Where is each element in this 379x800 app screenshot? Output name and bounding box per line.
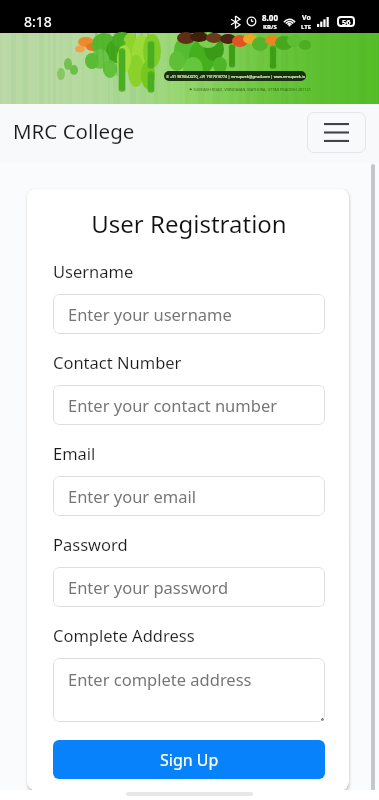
staticText: Contact Number xyxy=(53,351,182,373)
staticText: Email xyxy=(53,442,96,464)
staticText: User Registration xyxy=(53,207,325,240)
button[interactable]: Enter your username xyxy=(53,294,325,334)
button[interactable]: Enter your email xyxy=(53,476,325,516)
staticText: Username xyxy=(53,260,134,282)
staticText: ✆ +91 9876543210, +91 7017010774 | mrcup… xyxy=(166,74,305,79)
staticText: ⚑ SUBHASH ROAD, VRINDAVAN, MATHURA, UTTA… xyxy=(189,87,311,92)
staticText: KB/S xyxy=(263,23,277,31)
staticText: Password xyxy=(53,533,128,555)
staticText: Vo xyxy=(302,13,311,23)
staticText: 8:18 xyxy=(24,12,52,31)
staticText: Enter your password xyxy=(68,576,229,598)
staticText: Complete Address xyxy=(53,624,195,646)
button[interactable]: Sign Up xyxy=(53,740,325,779)
staticText: LTE xyxy=(301,23,312,31)
staticText: 56 xyxy=(342,17,351,27)
button[interactable]: Enter complete address xyxy=(53,658,325,722)
staticText: 8.00 xyxy=(262,12,278,23)
staticText: Enter your username xyxy=(68,303,232,325)
staticText: Enter your contact number xyxy=(68,394,278,416)
staticText: Enter complete address xyxy=(68,668,252,690)
button[interactable]: Enter your password xyxy=(53,567,325,607)
staticText: MRC College xyxy=(13,117,135,145)
staticText: Sign Up xyxy=(160,749,219,771)
staticText: Enter your email xyxy=(68,485,196,507)
button[interactable]: Open navigation menu xyxy=(307,112,366,153)
button[interactable]: Enter your contact number xyxy=(53,385,325,425)
